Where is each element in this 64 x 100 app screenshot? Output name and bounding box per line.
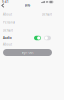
button[interactable]: Audio on [34, 36, 41, 40]
staticText: Info [24, 4, 30, 7]
button[interactable]: Personal [0, 20, 55, 25]
button[interactable]: About [0, 42, 55, 47]
staticText: Personal [3, 21, 15, 24]
staticText: Default [3, 29, 13, 32]
staticText: Audio [3, 36, 12, 40]
button[interactable]: Default [0, 28, 55, 33]
staticText: About [3, 13, 12, 16]
staticText: 9:41 [2, 0, 9, 4]
staticText: Default [42, 13, 52, 16]
button[interactable]: Haptics off [44, 36, 51, 40]
button[interactable]: About [0, 12, 55, 17]
button[interactable]: Back [0, 2, 6, 8]
button[interactable]: Sign Out [3, 49, 52, 56]
staticText: Sign Out [21, 51, 33, 54]
staticText: About [3, 43, 12, 46]
